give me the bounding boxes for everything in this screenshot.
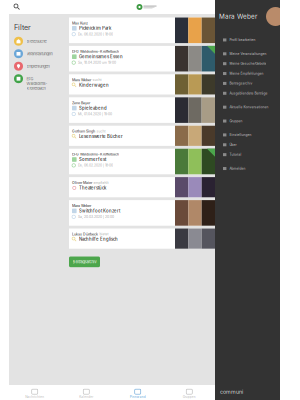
- staticText: Abmelden: [229, 167, 245, 170]
- staticText: Mara Weber: [72, 78, 91, 82]
- button[interactable]: EFG Waldsolms- Kröffelbach: [14, 74, 66, 91]
- staticText: Lukas Dürrbeck: [72, 232, 98, 236]
- staticText: Sommerfest: [79, 157, 106, 162]
- staticText: Ausgeblendete Beiträge: [229, 91, 267, 95]
- staticText: sucht: [92, 78, 101, 82]
- button[interactable]: Pinnwand: [112, 386, 163, 399]
- staticText: Nachrichten: [25, 395, 44, 399]
- staticText: Gruppen: [183, 395, 196, 399]
- staticText: Lesenswerte Bücher: [79, 134, 123, 139]
- button[interactable]: Abmelden: [215, 163, 290, 176]
- staticText: Nachhilfe Englisch: [79, 237, 118, 242]
- staticText: Veranstaltungen: [26, 52, 52, 56]
- staticText: Sa, 20.03.2020 | 20:00: [78, 215, 114, 219]
- button[interactable]: Biete/Suche: [14, 37, 66, 46]
- staticText: bietet: [99, 232, 108, 236]
- staticText: Gruppen: [229, 119, 242, 123]
- staticText: Gotham Singh: [72, 129, 95, 133]
- staticText: Über: [229, 143, 236, 147]
- staticText: Mi, 01.04.2020 | 19:00: [78, 112, 112, 116]
- button[interactable]: Mara Weber: [69, 74, 215, 94]
- button[interactable]: Einstellungen: [215, 129, 290, 143]
- staticText: communi: [220, 388, 243, 395]
- staticText: Picknick im Park: [79, 26, 111, 31]
- staticText: Gemeinsames Essen: [79, 54, 123, 59]
- staticText: sucht: [96, 129, 105, 133]
- button[interactable]: Lukas Dürrbeck: [69, 228, 215, 249]
- staticText: Max Kunz: [72, 21, 88, 25]
- staticText: EFG Waldsolms- Kröffelbach: [26, 77, 47, 91]
- staticText: Theaterstück: [79, 185, 106, 190]
- button[interactable]: Empfehlungen: [14, 62, 66, 71]
- button[interactable]: Beitragsarchiv: [69, 256, 100, 267]
- staticText: Spieleabend: [79, 105, 107, 111]
- button[interactable]: Veranstaltungen: [14, 49, 66, 58]
- staticText: EFG Waldsolms-Kröffelbach: [72, 152, 119, 156]
- button[interactable]: Aktuelle Konversationen: [215, 101, 290, 115]
- staticText: Meine Gesuche/Gebote: [229, 62, 266, 66]
- staticText: Profil bearbeiten: [229, 38, 255, 42]
- staticText: Einstellungen: [229, 133, 251, 137]
- staticText: Zeno Bayer: [72, 101, 90, 105]
- staticText: Aktuelle Konversationen: [229, 105, 268, 109]
- staticText: Beitragsarchiv: [229, 81, 252, 85]
- button[interactable]: Meine Veranstaltungen: [215, 48, 290, 62]
- staticText: Kinderwagen: [79, 82, 109, 88]
- button[interactable]: Beitragsarchiv: [215, 81, 290, 91]
- button[interactable]: Nachrichten: [9, 386, 60, 399]
- button[interactable]: Zeno Bayer: [69, 97, 215, 123]
- button[interactable]: Suche: [12, 0, 22, 14]
- staticText: Filter: [14, 23, 31, 32]
- staticText: Do, 06.02.2020 | 18:00: [78, 32, 113, 36]
- staticText: Beitragsarchiv: [72, 259, 96, 264]
- staticText: Do, 06.02.2020 | 18:00: [78, 163, 113, 167]
- button[interactable]: Gruppen: [163, 386, 215, 399]
- button[interactable]: Gruppen: [215, 115, 290, 129]
- staticText: EFG Waldsolms-Kröffelbach: [72, 49, 119, 54]
- button[interactable]: Mara Weber: [69, 200, 215, 226]
- button[interactable]: Kalender: [60, 386, 112, 399]
- staticText: Pinnwand: [130, 395, 146, 399]
- button[interactable]: EFG Waldsolms-Kröffelbach: [69, 46, 215, 71]
- staticText: Tutorial: [229, 153, 241, 157]
- staticText: Sa, 18.04.2020 um 19:00: [78, 61, 116, 65]
- staticText: Mara Weber: [219, 13, 257, 20]
- button[interactable]: Oliver Maier: [69, 177, 215, 197]
- staticText: Empfehlungen: [26, 64, 49, 69]
- staticText: Switchfoot Konzert: [79, 208, 120, 213]
- button[interactable]: EFG Waldsolms-Kröffelbach: [69, 149, 215, 174]
- button[interactable]: Profil bearbeiten: [215, 38, 290, 48]
- button[interactable]: Über: [215, 143, 290, 153]
- staticText: Oliver Maier: [72, 180, 92, 185]
- staticText: Kalender: [79, 395, 93, 399]
- button[interactable]: Ausgeblendete Beiträge: [215, 91, 290, 101]
- button[interactable]: Tutorial: [215, 153, 290, 163]
- button[interactable]: Meine Gesuche/Gebote: [215, 62, 290, 72]
- button[interactable]: Max Kunz: [69, 17, 215, 43]
- button[interactable]: Meine Empfehlungen: [215, 72, 290, 81]
- staticText: empfiehlt: [93, 181, 108, 185]
- staticText: Meine Veranstaltungen: [229, 52, 266, 56]
- staticText: Mara Weber: [72, 203, 91, 208]
- button[interactable]: Gotham Singh: [69, 126, 215, 146]
- staticText: Biete/Suche: [26, 39, 46, 44]
- staticText: Meine Empfehlungen: [229, 72, 263, 75]
